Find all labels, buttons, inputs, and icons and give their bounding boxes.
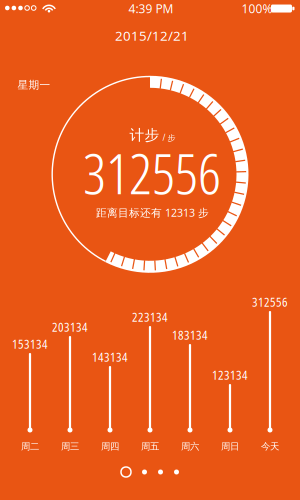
- staticText: 312556: [83, 134, 221, 211]
- staticText: 今天: [261, 441, 279, 452]
- button[interactable]: 223134: [0, 0, 300, 500]
- staticText: 计步: [129, 126, 159, 144]
- staticText: 周二: [21, 441, 39, 452]
- staticText: 203134: [52, 319, 88, 335]
- staticText: 123134: [212, 367, 248, 383]
- staticText: 周五: [141, 441, 159, 452]
- button[interactable]: 183134: [0, 0, 300, 500]
- staticText: 星期一: [17, 78, 50, 91]
- staticText: / 步: [162, 132, 175, 143]
- staticText: 223134: [132, 309, 168, 325]
- staticText: 4:39 PM: [128, 0, 173, 16]
- staticText: 183134: [172, 327, 208, 343]
- staticText: 周日: [221, 441, 239, 452]
- staticText: 153134: [12, 336, 48, 352]
- staticText: 周三: [61, 441, 79, 452]
- staticText: 100%: [241, 0, 272, 16]
- staticText: 143134: [92, 349, 128, 365]
- button[interactable]: 312556: [0, 0, 300, 500]
- button[interactable]: 203134: [0, 0, 300, 500]
- staticText: 周六: [181, 441, 199, 452]
- button[interactable]: 143134: [0, 0, 300, 500]
- button[interactable]: 153134: [0, 0, 300, 500]
- staticText: 距离目标还有 12313 步: [96, 205, 209, 220]
- staticText: 周四: [101, 441, 119, 452]
- staticText: 2015/12/21: [115, 27, 189, 44]
- staticText: 312556: [252, 294, 288, 310]
- button[interactable]: 123134: [0, 0, 300, 500]
